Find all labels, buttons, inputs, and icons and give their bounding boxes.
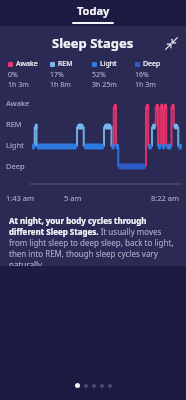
button[interactable]: Light bbox=[92, 59, 135, 90]
button[interactable]: Collapse bbox=[162, 34, 180, 52]
staticText: Awake bbox=[6, 98, 30, 108]
staticText: 1h 8m bbox=[50, 80, 71, 90]
staticText: Deep bbox=[143, 59, 161, 69]
button[interactable]: REM bbox=[50, 59, 92, 90]
staticText: 17% bbox=[50, 70, 64, 80]
staticText: Sleep Stages bbox=[52, 34, 134, 52]
staticText: 1h 3m bbox=[135, 80, 156, 90]
staticText: At night, your body cycles through diffe… bbox=[9, 215, 177, 266]
button[interactable]: Deep bbox=[135, 59, 178, 90]
staticText: Deep bbox=[6, 161, 25, 171]
staticText: REM bbox=[6, 119, 22, 129]
staticText: 8:22 am bbox=[151, 193, 180, 203]
staticText: 5 am bbox=[64, 193, 122, 203]
staticText: 1h 3m bbox=[8, 80, 29, 90]
staticText: 1:43 am bbox=[6, 193, 64, 203]
staticText: 16% bbox=[135, 70, 149, 80]
staticText: REM bbox=[58, 59, 73, 69]
staticText: Awake bbox=[16, 59, 38, 69]
staticText: Today bbox=[77, 3, 110, 18]
staticText: 3h 25m bbox=[92, 80, 117, 90]
staticText: Light bbox=[6, 140, 24, 150]
staticText: Light bbox=[100, 59, 117, 69]
staticText: 52% bbox=[92, 70, 106, 80]
button[interactable]: Today bbox=[62, 0, 124, 24]
staticText: 0% bbox=[8, 70, 18, 80]
button[interactable]: Awake bbox=[8, 59, 50, 90]
